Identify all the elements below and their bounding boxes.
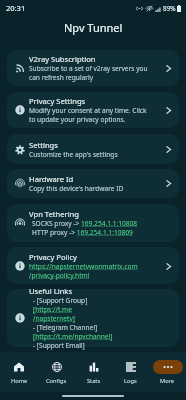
- staticText: Hardware Id: [29, 174, 74, 184]
- staticText: Customize the app's settings: [29, 150, 118, 159]
- button[interactable]: More: [149, 352, 186, 392]
- staticText: Subscribe to a set of v2ray servers you …: [29, 64, 148, 82]
- staticText: More: [160, 377, 175, 385]
- button[interactable]: Open v2ray subscription settings: [7, 50, 179, 86]
- button[interactable]: Useful links: [7, 289, 179, 347]
- staticText: Modify your consent at any time. Click t…: [29, 106, 147, 124]
- staticText: Logs: [124, 377, 137, 385]
- button[interactable]: Open settings: [7, 134, 179, 164]
- staticText: Home: [11, 377, 28, 385]
- staticText: V2ray Subscription: [29, 54, 96, 64]
- staticText: Stats: [87, 377, 101, 385]
- button[interactable]: Vpn tethering: [7, 204, 179, 242]
- staticText: Settings: [29, 140, 58, 150]
- button[interactable]: Home: [0, 352, 38, 392]
- staticText: Vpn Tethering: [29, 209, 79, 219]
- staticText: SOCKS proxy -> 169.254.1.1:10808: [32, 219, 138, 228]
- staticText: 20:31: [6, 3, 26, 13]
- staticText: https://napsternetvwonmatrix.com /privac…: [29, 262, 138, 280]
- button[interactable]: Open privacy settings: [7, 92, 179, 128]
- button[interactable]: Logs: [112, 352, 149, 392]
- button[interactable]: Stats: [75, 352, 112, 392]
- staticText: 89%: [163, 4, 176, 13]
- staticText: Npv Tunnel: [64, 20, 123, 35]
- button[interactable]: Copy hardware id: [7, 169, 179, 198]
- staticText: [https://t.me/npvchannel]: [33, 332, 113, 341]
- staticText: Copy this device's hardware ID: [29, 184, 124, 193]
- staticText: - [Support Group]: [33, 296, 88, 305]
- staticText: - [Support Email]: [33, 341, 85, 350]
- staticText: Privacy Policy: [29, 252, 77, 262]
- staticText: Privacy Settings: [29, 96, 86, 106]
- staticText: Configs: [46, 377, 67, 385]
- staticText: Useful Links: [29, 286, 73, 296]
- button[interactable]: Configs: [38, 352, 75, 392]
- staticText: HTTP proxy -> 169.254.1.1:10809: [32, 228, 133, 237]
- button[interactable]: Open privacy policy: [7, 247, 179, 284]
- staticText: [https://t.me /napsternetv]: [33, 305, 75, 323]
- staticText: - [Telegram Channel]: [33, 323, 98, 332]
